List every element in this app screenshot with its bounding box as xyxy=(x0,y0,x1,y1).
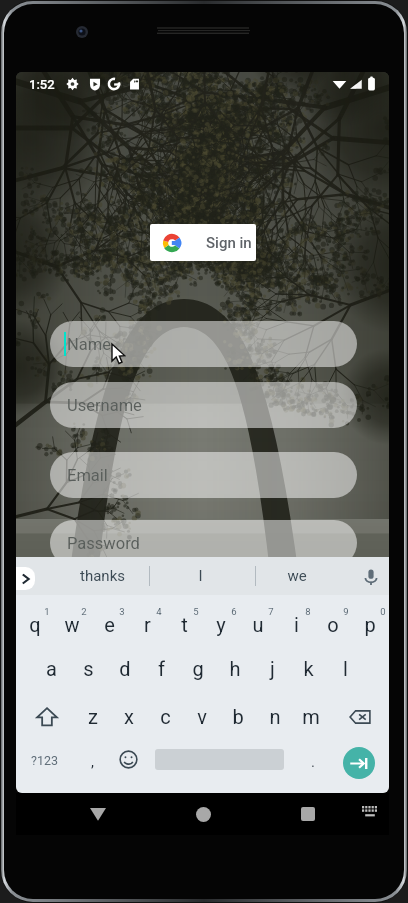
staticText: t xyxy=(181,613,188,636)
staticText: n xyxy=(269,705,281,728)
staticText: g xyxy=(192,657,204,680)
button[interactable]: we xyxy=(252,557,342,595)
staticText: thanks xyxy=(80,567,125,585)
staticText: 1:52 xyxy=(29,77,55,92)
button[interactable]: g xyxy=(180,650,216,686)
staticText: Password xyxy=(67,534,140,553)
button[interactable]: q xyxy=(17,606,53,642)
button[interactable]: y xyxy=(203,606,239,642)
button[interactable]: I xyxy=(155,557,245,595)
button[interactable]: c xyxy=(147,698,183,734)
button[interactable]: Back xyxy=(83,799,113,829)
button[interactable]: Sign in xyxy=(150,224,256,261)
staticText: m xyxy=(302,705,320,728)
button[interactable]: 3 xyxy=(104,593,140,629)
button[interactable]: , xyxy=(74,744,110,780)
staticText: 1 xyxy=(44,606,50,617)
staticText: r xyxy=(144,613,151,636)
staticText: i xyxy=(294,613,299,636)
button[interactable]: 1 xyxy=(29,593,65,629)
staticText: Username xyxy=(67,396,142,415)
button[interactable]: . xyxy=(295,744,331,780)
staticText: y xyxy=(216,613,226,636)
button[interactable]: Backspace xyxy=(344,701,375,732)
staticText: x xyxy=(124,705,134,728)
staticText: k xyxy=(303,657,314,680)
staticText: . xyxy=(311,753,315,771)
staticText: Sign in xyxy=(206,234,252,252)
staticText: u xyxy=(252,613,264,636)
button[interactable]: 2 xyxy=(66,593,102,629)
button[interactable]: 4 xyxy=(141,593,177,629)
staticText: l xyxy=(343,657,348,680)
button[interactable]: Switch keyboard xyxy=(357,801,383,827)
staticText: z xyxy=(88,705,98,728)
button[interactable]: e xyxy=(91,606,127,642)
button[interactable]: 0 xyxy=(365,593,389,629)
button[interactable]: s xyxy=(70,650,106,686)
button[interactable]: o xyxy=(315,606,351,642)
staticText: 4 xyxy=(156,606,162,617)
button[interactable]: t xyxy=(166,606,202,642)
button[interactable]: i xyxy=(278,606,314,642)
staticText: 0 xyxy=(380,606,386,617)
staticText: s xyxy=(83,657,94,680)
button[interactable]: Username xyxy=(50,382,357,428)
button[interactable]: Voice input xyxy=(359,565,382,588)
button[interactable]: Email xyxy=(50,452,357,498)
staticText: 2 xyxy=(81,606,87,617)
button[interactable]: a xyxy=(33,650,69,686)
staticText: Name xyxy=(67,335,111,354)
button[interactable]: r xyxy=(129,606,165,642)
staticText: h xyxy=(229,657,241,680)
staticText: 5 xyxy=(193,606,199,617)
button[interactable]: Recent apps xyxy=(293,799,323,829)
staticText: I xyxy=(198,567,203,585)
button[interactable]: j xyxy=(254,650,290,686)
staticText: ?123 xyxy=(31,753,58,768)
button[interactable]: Expand suggestions xyxy=(16,567,35,590)
staticText: c xyxy=(160,705,171,728)
button[interactable]: f xyxy=(143,650,179,686)
button[interactable]: u xyxy=(240,606,276,642)
staticText: f xyxy=(158,657,165,680)
button[interactable]: z xyxy=(75,698,111,734)
staticText: 3 xyxy=(119,606,125,617)
button[interactable]: p xyxy=(352,606,388,642)
staticText: d xyxy=(119,657,131,680)
button[interactable]: Next xyxy=(343,747,375,779)
button[interactable]: l xyxy=(327,650,363,686)
button[interactable]: 8 xyxy=(290,593,326,629)
button[interactable]: 6 xyxy=(216,593,252,629)
button[interactable]: ?123 xyxy=(25,745,63,775)
button[interactable]: m xyxy=(293,698,329,734)
staticText: v xyxy=(197,705,207,728)
button[interactable]: n xyxy=(257,698,293,734)
staticText: 7 xyxy=(268,606,274,617)
button[interactable]: Shift xyxy=(31,701,62,732)
staticText: o xyxy=(327,613,339,636)
button[interactable]: 7 xyxy=(253,593,289,629)
button[interactable]: 9 xyxy=(328,593,364,629)
button[interactable]: x xyxy=(111,698,147,734)
button[interactable]: Emoji xyxy=(115,746,142,773)
button[interactable]: w xyxy=(54,606,90,642)
button[interactable]: b xyxy=(220,698,256,734)
button[interactable]: d xyxy=(107,650,143,686)
staticText: j xyxy=(270,657,275,680)
staticText: , xyxy=(91,753,94,771)
button[interactable]: h xyxy=(217,650,253,686)
staticText: e xyxy=(104,613,115,636)
staticText: w xyxy=(64,613,80,636)
button[interactable]: 5 xyxy=(178,593,214,629)
staticText: q xyxy=(29,613,41,636)
button[interactable]: Name xyxy=(50,321,357,367)
button[interactable]: Home xyxy=(188,799,218,829)
button[interactable]: Password xyxy=(50,520,357,566)
button[interactable]: thanks xyxy=(57,557,147,595)
staticText: p xyxy=(364,613,376,636)
button[interactable]: v xyxy=(184,698,220,734)
button[interactable]: k xyxy=(290,650,326,686)
staticText: 8 xyxy=(305,606,311,617)
